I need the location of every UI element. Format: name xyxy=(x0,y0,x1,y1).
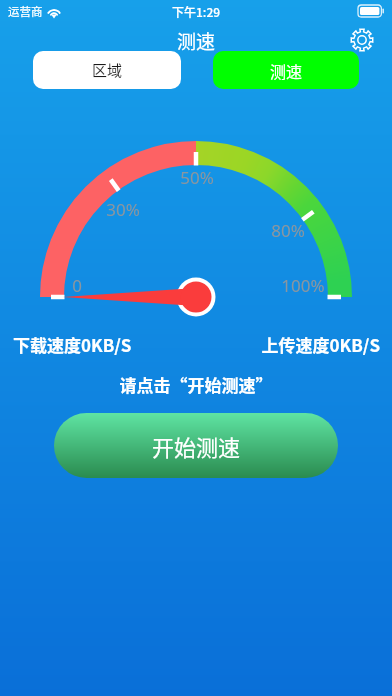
staticText: 测速 xyxy=(0,27,392,55)
button[interactable]: 开始测速 xyxy=(54,413,338,478)
staticText: 测速 xyxy=(270,59,303,82)
staticText: 开始测速 xyxy=(152,430,241,462)
button[interactable]: Settings xyxy=(350,28,374,52)
staticText: 下午1:29 xyxy=(172,3,221,20)
button[interactable]: 测速 xyxy=(213,51,359,89)
staticText: 上传速度0KB/S xyxy=(0,332,380,357)
staticText: 区域 xyxy=(92,59,123,81)
button[interactable]: 区域 xyxy=(33,51,181,89)
staticText: 100% xyxy=(263,274,343,297)
staticText: 80% xyxy=(248,219,328,242)
staticText: 50% xyxy=(157,166,237,189)
staticText: 运营商 xyxy=(8,3,43,20)
staticText: 30% xyxy=(83,198,163,221)
staticText: 下载速度0KB/S xyxy=(13,332,132,357)
staticText: 0 xyxy=(37,274,117,297)
staticText: 请点击“开始测速” xyxy=(0,372,392,397)
